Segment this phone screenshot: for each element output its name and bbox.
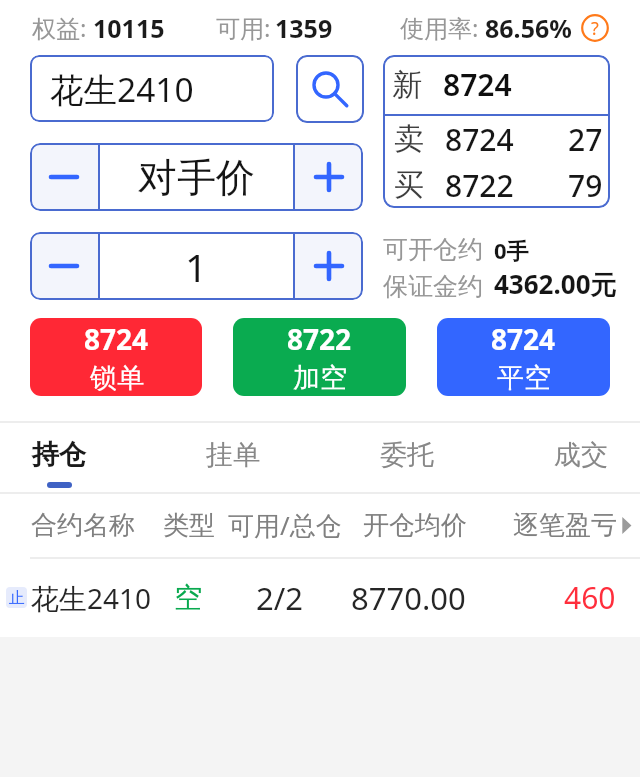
- staticText: 8722: [287, 320, 352, 358]
- staticText: 可用:: [216, 11, 271, 44]
- staticText: 可开仓约: [383, 234, 483, 265]
- button[interactable]: 挂单: [206, 428, 260, 498]
- staticText: 8724: [491, 320, 556, 358]
- staticText: 持仓: [32, 438, 86, 472]
- button[interactable]: 止: [0, 558, 640, 637]
- staticText: 空: [174, 580, 202, 615]
- staticText: 新: [392, 66, 422, 104]
- button[interactable]: 1: [100, 232, 293, 300]
- staticText: 类型: [163, 509, 215, 542]
- staticText: 79: [568, 165, 603, 206]
- button[interactable]: 持仓: [32, 428, 86, 498]
- button[interactable]: 8722: [233, 318, 406, 396]
- staticText: ?: [591, 16, 599, 41]
- button[interactable]: Help: [581, 14, 609, 42]
- staticText: 花生2410: [50, 66, 194, 112]
- staticText: 平空: [497, 361, 551, 395]
- staticText: 27: [568, 119, 603, 160]
- staticText: 逐笔盈亏: [513, 509, 617, 542]
- staticText: 可用/总仓: [228, 507, 342, 543]
- staticText: 460: [564, 577, 616, 618]
- staticText: 使用率:: [400, 11, 479, 44]
- staticText: 8724: [84, 320, 149, 358]
- staticText: 权益:: [32, 11, 87, 44]
- staticText: 保证金约: [383, 271, 483, 302]
- staticText: 1: [185, 240, 208, 293]
- staticText: 锁单: [90, 361, 144, 395]
- staticText: 8722: [445, 165, 514, 206]
- button[interactable]: 成交: [554, 428, 608, 498]
- button[interactable]: 8724: [437, 318, 610, 396]
- staticText: 对手价: [138, 153, 255, 202]
- staticText: 委托: [380, 438, 434, 472]
- button[interactable]: 花生2410: [30, 55, 274, 122]
- staticText: 成交: [554, 438, 608, 472]
- button[interactable]: Increase: [295, 143, 363, 211]
- staticText: 0手: [494, 235, 529, 265]
- staticText: 86.56%: [485, 11, 572, 45]
- staticText: 开仓均价: [363, 509, 467, 542]
- staticText: 8770.00: [351, 577, 466, 619]
- button[interactable]: 8724: [30, 318, 202, 396]
- staticText: 止: [9, 588, 25, 608]
- button[interactable]: Decrease: [30, 143, 98, 211]
- button[interactable]: Increase: [295, 232, 363, 300]
- staticText: 2/2: [256, 577, 303, 619]
- staticText: 合约名称: [31, 509, 135, 542]
- staticText: 加空: [293, 361, 347, 395]
- staticText: 买: [394, 166, 424, 204]
- button[interactable]: Decrease: [30, 232, 98, 300]
- staticText: 挂单: [206, 438, 260, 472]
- staticText: 8724: [443, 64, 512, 105]
- staticText: 1359: [275, 11, 333, 45]
- staticText: 10115: [93, 11, 165, 45]
- staticText: 花生2410: [31, 579, 152, 617]
- button[interactable]: 委托: [380, 428, 434, 498]
- staticText: 4362.00元: [494, 266, 617, 302]
- staticText: 卖: [394, 120, 424, 158]
- button[interactable]: 对手价: [100, 143, 293, 211]
- staticText: 8724: [445, 119, 514, 160]
- button[interactable]: Search: [296, 55, 364, 123]
